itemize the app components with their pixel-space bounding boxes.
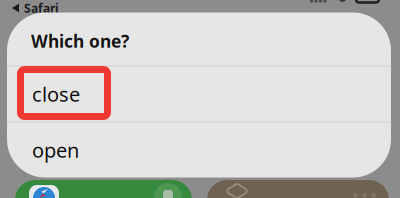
button[interactable]: close (7, 66, 391, 121)
staticText: Safari (24, 0, 59, 16)
button[interactable]: open (7, 122, 391, 177)
staticText: close (32, 81, 80, 107)
button[interactable]: Safari (0, 1, 65, 15)
staticText: Which one? (31, 29, 129, 52)
staticText: open (32, 137, 79, 163)
